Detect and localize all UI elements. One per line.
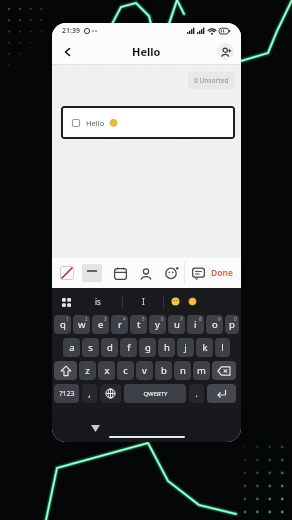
button[interactable]: Hello [61,106,235,139]
button[interactable]: , [82,384,97,403]
staticText: v [142,364,147,377]
staticText: q [60,318,66,331]
staticText: c [123,364,128,377]
staticText: a [69,341,75,354]
button[interactable]: z [79,361,96,380]
staticText: Hello [132,44,161,59]
button[interactable]: is [73,296,122,307]
staticText: 9 [218,316,221,322]
button[interactable]: ?123 [54,384,79,403]
staticText: 8 [199,316,202,322]
staticText: u [174,318,180,331]
button[interactable] [212,361,236,380]
button[interactable] [112,265,128,281]
staticText: is [95,296,101,307]
staticText: 4 [123,316,126,322]
button[interactable]: a [63,338,80,357]
button[interactable]: r [111,315,128,334]
button[interactable]: I [123,296,163,307]
staticText: k [202,341,208,354]
button[interactable]: b [155,361,172,380]
button[interactable]: l [215,338,230,357]
button[interactable]: n [174,361,191,380]
button[interactable] [59,295,73,309]
staticText: e [98,318,104,331]
button[interactable] [164,265,180,281]
staticText: s [88,341,93,354]
button[interactable]: q [54,315,71,334]
staticText: Done [211,267,233,279]
staticText: x [104,364,110,377]
button[interactable]: 0 Unsorted [188,72,235,89]
staticText: QWERTY [143,390,168,398]
staticText: 0 Unsorted [194,76,229,85]
button[interactable] [138,266,153,281]
staticText: . [195,387,198,400]
staticText: 5 [142,316,145,322]
staticText: ?123 [59,389,75,399]
button[interactable] [207,384,236,403]
button[interactable]: m [193,361,210,380]
staticText: h [164,341,170,354]
staticText: z [85,364,90,377]
staticText: w [78,318,86,331]
staticText: l [221,341,224,354]
button[interactable] [82,264,102,282]
staticText: r [118,318,122,331]
button[interactable]: h [158,338,175,357]
button[interactable] [164,297,204,306]
staticText: p [229,318,235,331]
button[interactable]: d [101,338,118,357]
staticText: i [194,318,197,331]
staticText: m [197,364,206,377]
staticText: d [107,341,113,354]
staticText: 1 [66,316,69,322]
button[interactable]: x [98,361,115,380]
button[interactable] [217,43,234,60]
button[interactable]: k [196,338,213,357]
button[interactable]: Done [211,258,233,288]
staticText: 6 [161,316,164,322]
button[interactable] [190,265,206,281]
button[interactable]: QWERTY [124,384,186,403]
staticText: j [184,341,187,354]
staticText: 7 [180,316,183,322]
button[interactable]: s [82,338,99,357]
staticText: o [212,318,218,331]
button[interactable]: . [189,384,204,403]
button[interactable]: i [187,315,204,334]
staticText: n [180,364,186,377]
staticText: 21:39 [62,26,80,36]
button[interactable] [58,264,76,282]
button[interactable]: y [149,315,166,334]
button[interactable]: j [177,338,194,357]
staticText: , [88,387,91,400]
button[interactable]: u [168,315,185,334]
button[interactable]: g [139,338,156,357]
staticText: 3 [104,316,107,322]
button[interactable]: t [130,315,147,334]
staticText: 2 [85,316,88,322]
staticText: b [161,364,167,377]
button[interactable]: o [206,315,223,334]
button[interactable]: e [92,315,109,334]
staticText: f [127,341,131,354]
button[interactable] [54,361,77,380]
button[interactable]: f [120,338,137,357]
button[interactable]: p [225,315,239,334]
button[interactable]: v [136,361,153,380]
staticText: I [142,296,145,307]
button[interactable] [60,44,76,60]
staticText: 0 [234,316,237,322]
button[interactable] [100,384,121,403]
button[interactable]: w [73,315,90,334]
button[interactable]: c [117,361,134,380]
staticText: y [155,318,160,331]
staticText: Hello [86,118,105,128]
staticText: t [137,318,141,331]
staticText: g [145,341,151,354]
button[interactable] [88,421,102,435]
